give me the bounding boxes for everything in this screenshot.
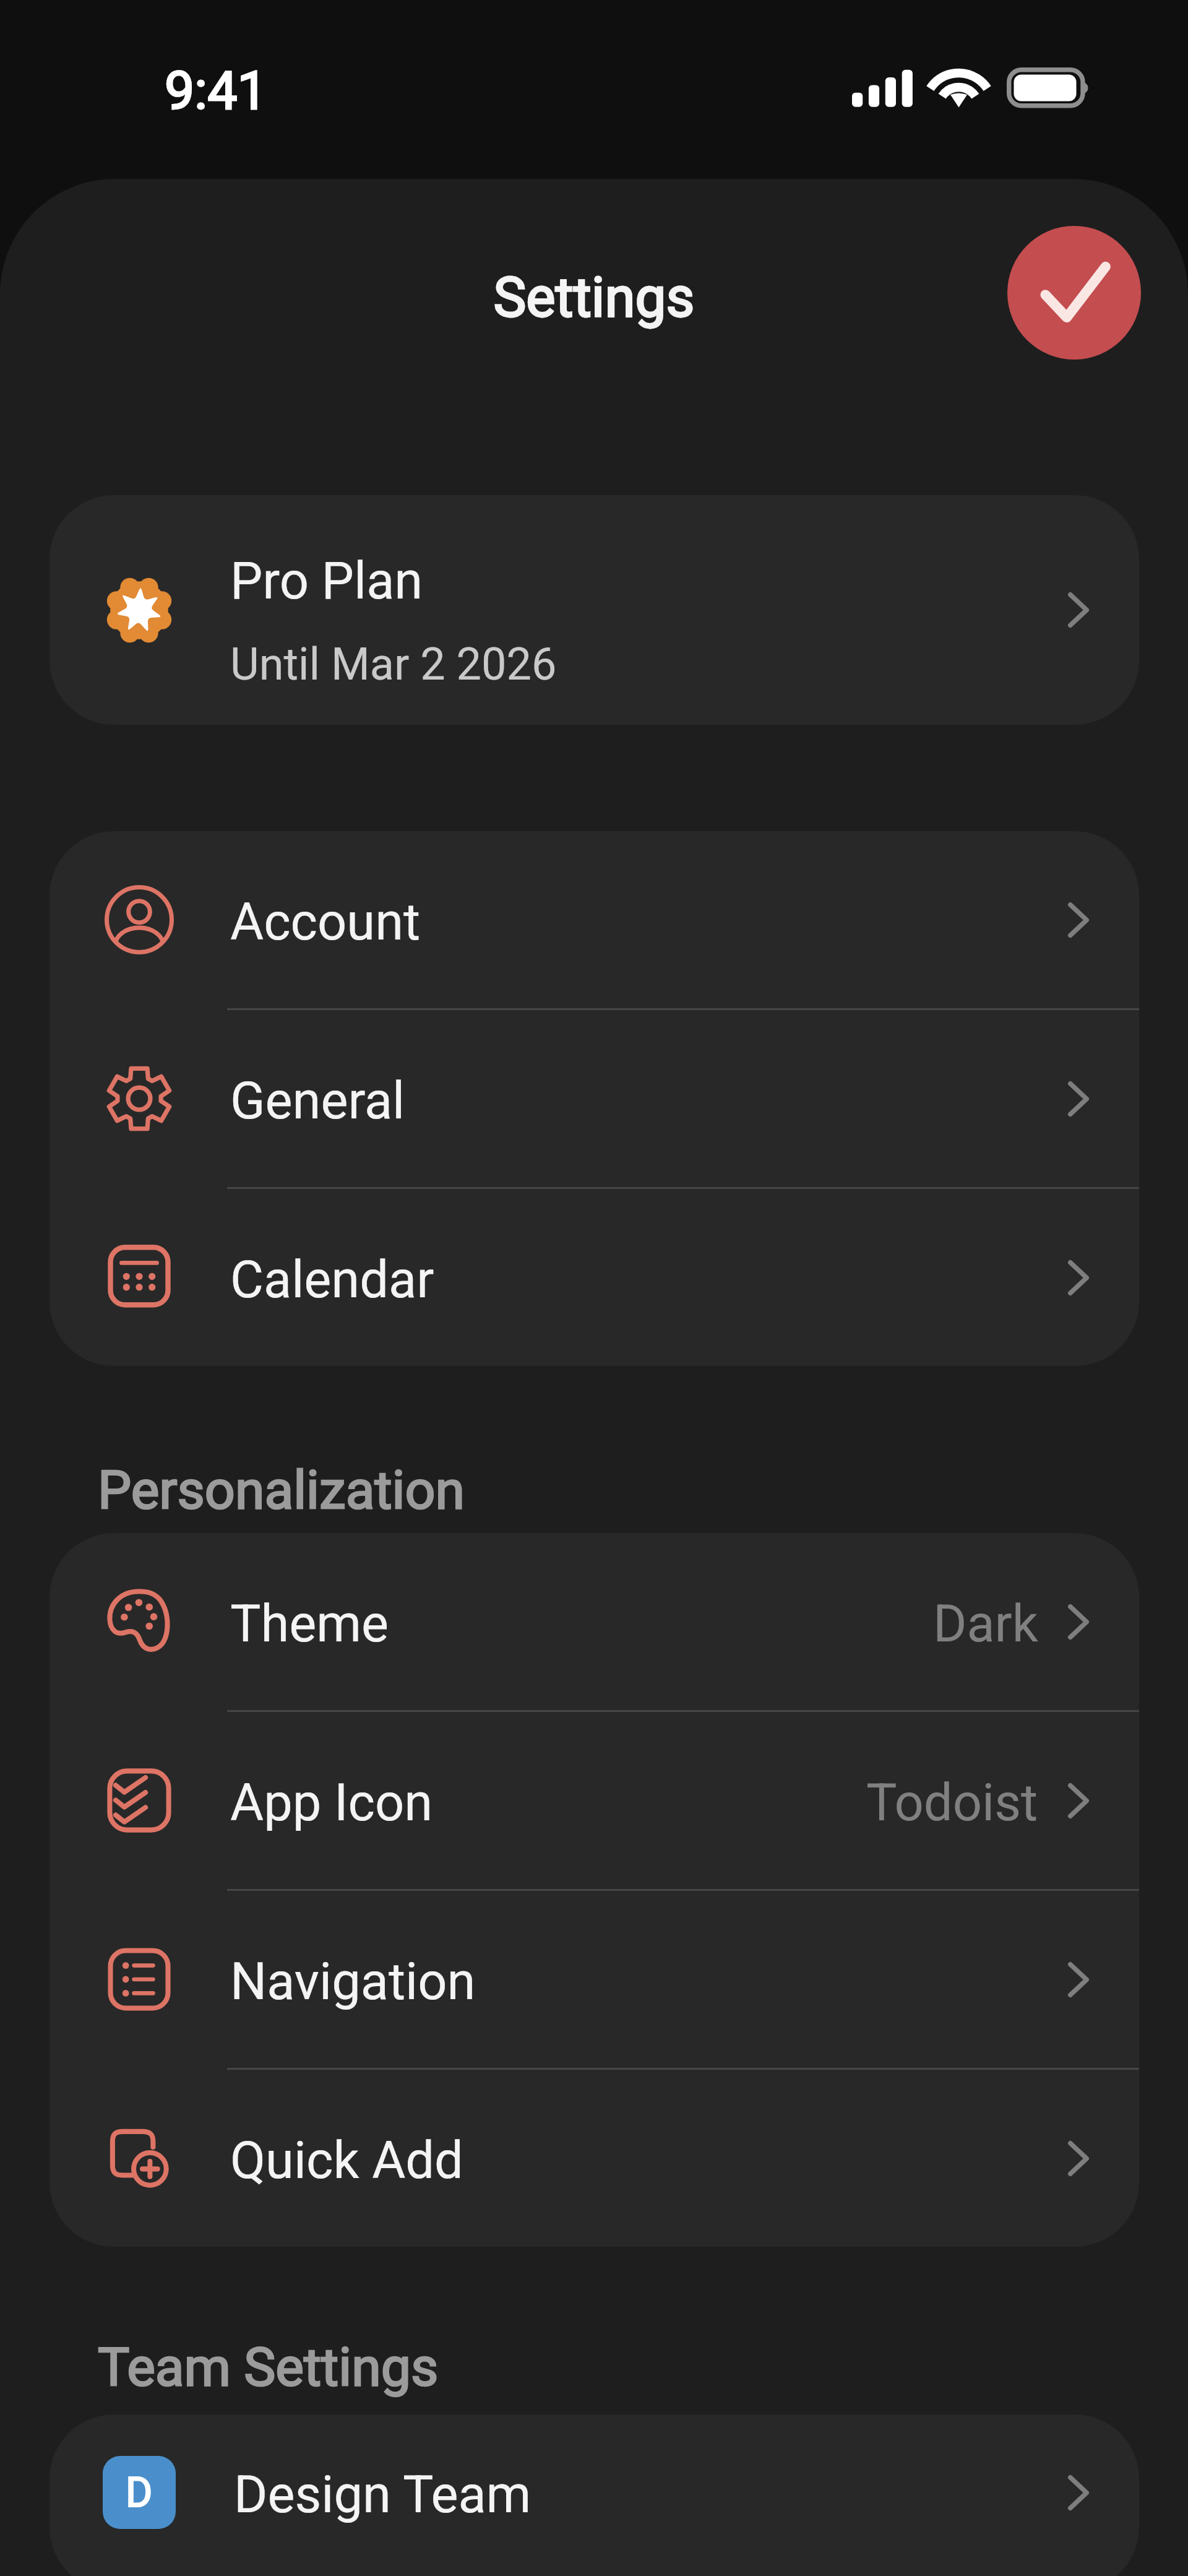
staticText: Theme: [230, 1594, 389, 1654]
button[interactable]: Done: [1007, 226, 1141, 360]
button[interactable]: App Icon: [49, 1712, 1139, 1889]
staticText: App Icon: [230, 1773, 433, 1833]
staticText: Pro Plan: [230, 551, 423, 611]
staticText: Team Settings: [98, 2336, 439, 2398]
staticText: Design Team: [234, 2465, 532, 2525]
staticText: Navigation: [230, 1951, 476, 2012]
staticText: Todoist: [866, 1773, 1038, 1833]
staticText: D: [126, 2469, 153, 2517]
staticText: Settings: [0, 265, 1188, 329]
staticText: Calendar: [230, 1250, 434, 1310]
button[interactable]: Calendar: [49, 1189, 1139, 1366]
staticText: Dark: [933, 1594, 1038, 1654]
staticText: General: [230, 1071, 405, 1131]
staticText: Account: [230, 892, 421, 952]
button[interactable]: D: [49, 2414, 1139, 2576]
button[interactable]: Navigation: [49, 1891, 1139, 2068]
staticText: Until Mar 2 2026: [230, 638, 557, 690]
button[interactable]: Pro Plan: [49, 495, 1139, 725]
button[interactable]: Quick Add: [49, 2070, 1139, 2247]
button[interactable]: General: [49, 1010, 1139, 1187]
staticText: 9:41: [165, 59, 267, 122]
staticText: Quick Add: [230, 2130, 463, 2190]
staticText: Personalization: [98, 1459, 465, 1521]
button[interactable]: Account: [49, 831, 1139, 1008]
button[interactable]: Theme: [49, 1533, 1139, 1710]
